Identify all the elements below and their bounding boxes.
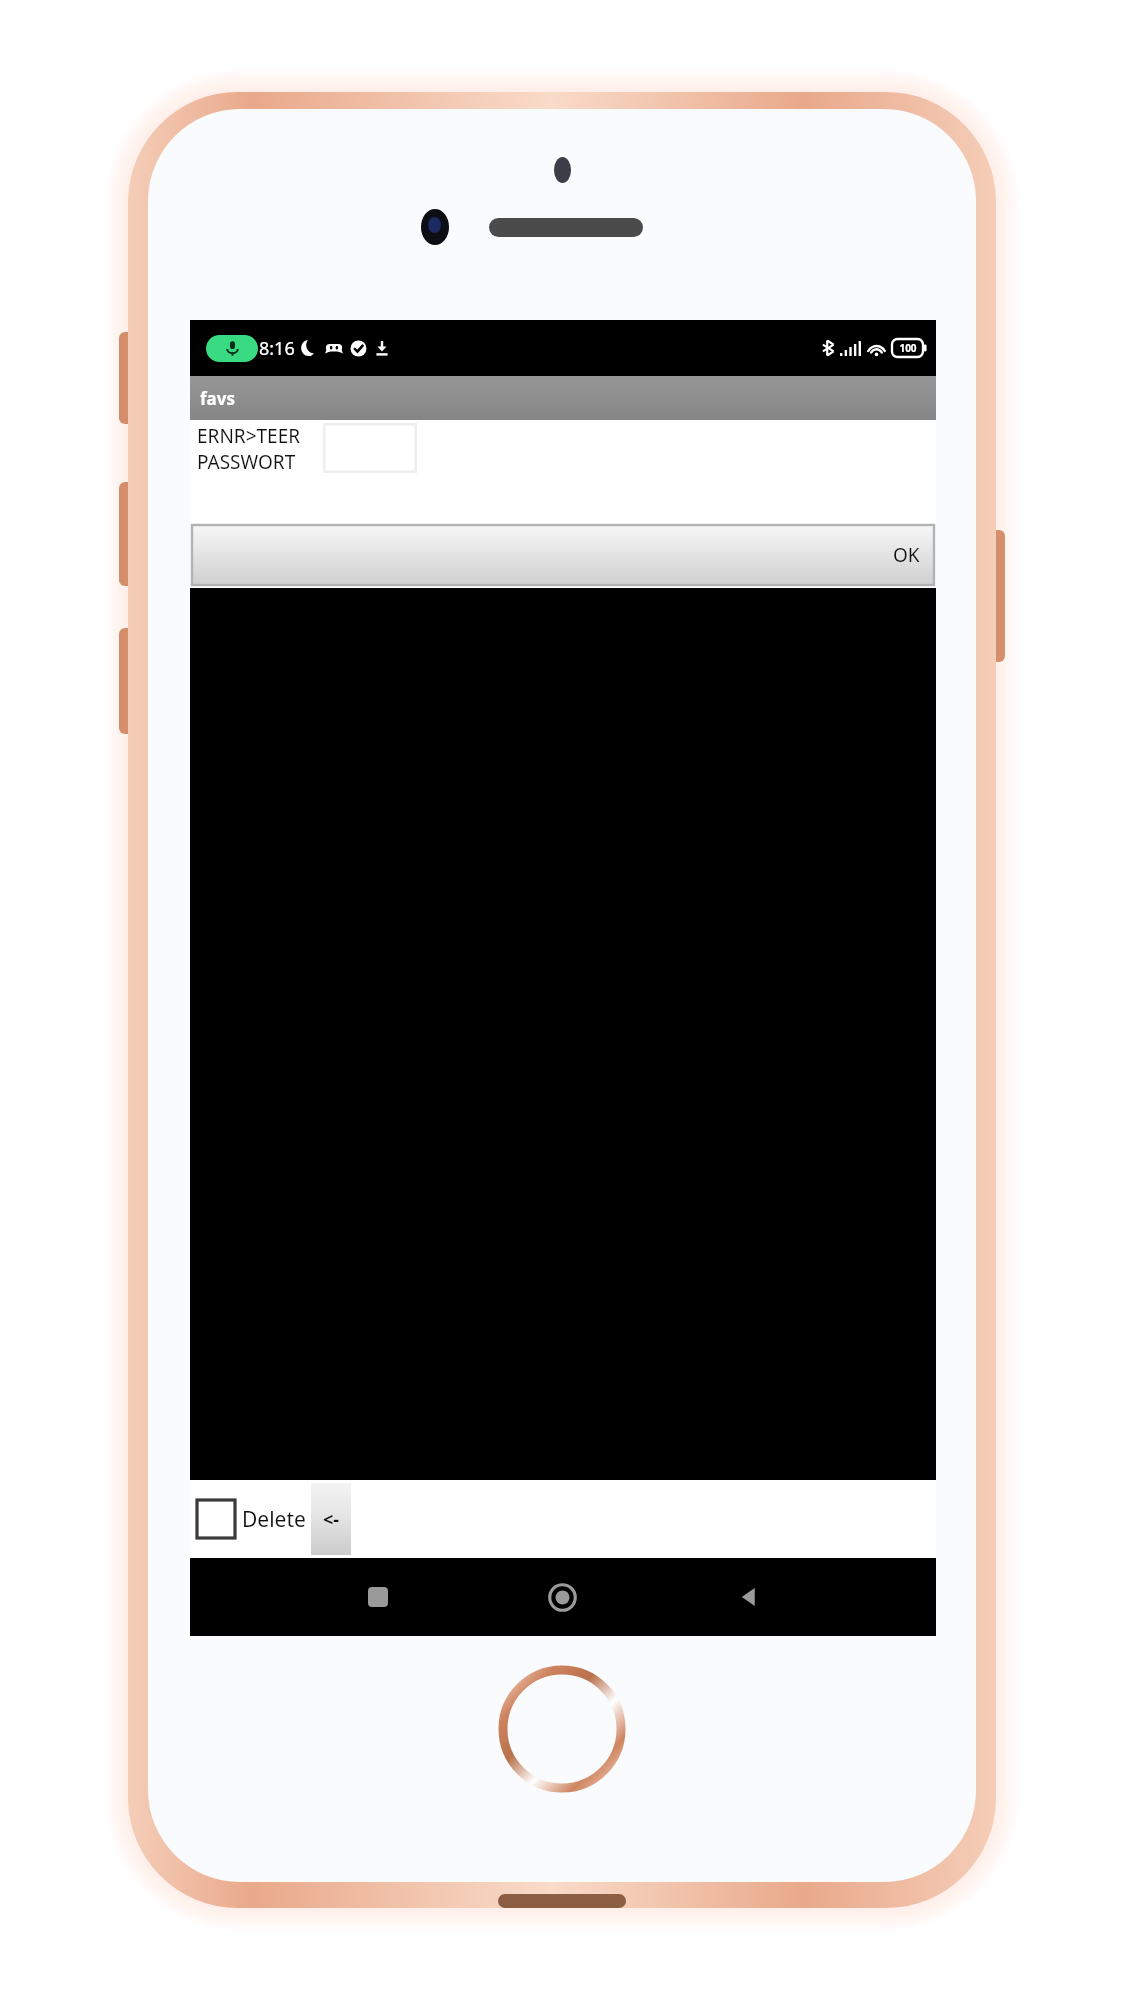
button[interactable]: Delete checkbox <box>197 1500 235 1538</box>
button[interactable]: Microphone in use <box>206 335 258 362</box>
button[interactable]: Back <box>655 1558 840 1636</box>
staticText: OK <box>893 542 920 568</box>
button[interactable]: Recent apps <box>285 1558 470 1636</box>
button[interactable]: Backspace <box>311 1483 351 1555</box>
button[interactable]: Password field <box>323 423 417 473</box>
button[interactable]: favs <box>190 376 936 420</box>
staticText: <- <box>323 1507 340 1532</box>
staticText: 8:16 <box>259 336 295 361</box>
staticText: PASSWORT <box>197 449 296 475</box>
staticText: 100 <box>899 341 917 355</box>
button[interactable]: OK <box>192 525 934 585</box>
button[interactable]: Home <box>470 1558 655 1636</box>
staticText: favs <box>200 387 236 410</box>
staticText: Delete <box>242 1505 306 1534</box>
staticText: ERNR>TEER <box>197 423 301 449</box>
